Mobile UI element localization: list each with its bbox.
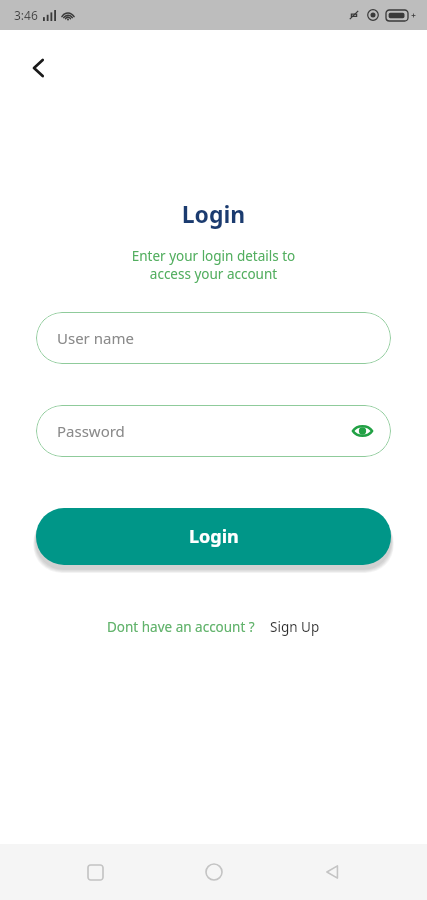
staticText: Enter your login details to access your … <box>24 247 403 283</box>
button[interactable]: Dont have an account ? <box>105 614 257 640</box>
staticText: Sign Up <box>270 618 320 636</box>
staticText: Dont have an account ? <box>107 618 255 636</box>
button[interactable]: Show password <box>347 416 377 446</box>
button[interactable]: Back <box>16 46 60 90</box>
button[interactable]: Sign Up <box>268 614 322 640</box>
staticText: Login <box>189 524 239 549</box>
button[interactable]: Login <box>36 508 391 565</box>
staticText: Login <box>0 198 427 229</box>
staticText: Password <box>57 421 125 441</box>
button[interactable]: Password <box>36 405 391 457</box>
button[interactable]: Home <box>190 848 238 896</box>
button[interactable]: Recents <box>71 848 119 896</box>
staticText: User name <box>57 328 134 348</box>
staticText: 3:46 <box>14 7 38 23</box>
button[interactable]: User name <box>36 312 391 364</box>
button[interactable]: Back <box>308 848 356 896</box>
